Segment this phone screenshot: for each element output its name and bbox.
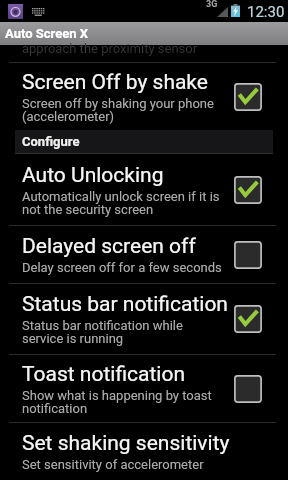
staticText: Status bar notification while service is… [22, 318, 183, 346]
staticText: Screen Off by shake [22, 70, 208, 95]
button[interactable]: Delayed screen off [0, 226, 288, 283]
staticText: approach the proximity sensor [22, 41, 198, 56]
staticText: Auto Unlocking [22, 163, 164, 188]
button[interactable]: Auto Screen X [0, 22, 288, 45]
staticText: Delay screen off for a few seconds [22, 260, 222, 275]
staticText: Auto Screen X [5, 26, 88, 41]
button[interactable]: Disabled [233, 240, 263, 270]
button[interactable]: Toast notification [0, 355, 288, 422]
button[interactable]: Enabled [233, 304, 263, 334]
button[interactable]: Enabled [233, 175, 263, 205]
staticText: Show what is happening by toast notifica… [22, 388, 212, 416]
button[interactable]: Disabled [233, 374, 263, 404]
button[interactable]: Screen Off by shake [0, 63, 288, 130]
staticText: Automatically unlock screen if it is not… [22, 189, 220, 217]
button[interactable]: Enabled [233, 82, 263, 112]
staticText: Configure [22, 134, 80, 149]
staticText: Set shaking sensitivity [22, 431, 230, 456]
staticText: Screen off by shaking your phone (accele… [22, 96, 214, 124]
staticText: Delayed screen off [22, 234, 196, 259]
button[interactable]: Auto Unlocking [0, 155, 288, 225]
button[interactable]: Set shaking sensitivity [0, 423, 288, 480]
staticText: Set sensitivity of accelerometer [22, 457, 204, 472]
staticText: 12:30 [247, 3, 285, 21]
button[interactable]: Status bar notification [0, 284, 288, 354]
staticText: Status bar notification [22, 292, 227, 317]
staticText: Toast notification [22, 362, 185, 387]
staticText: 3G [206, 0, 218, 10]
